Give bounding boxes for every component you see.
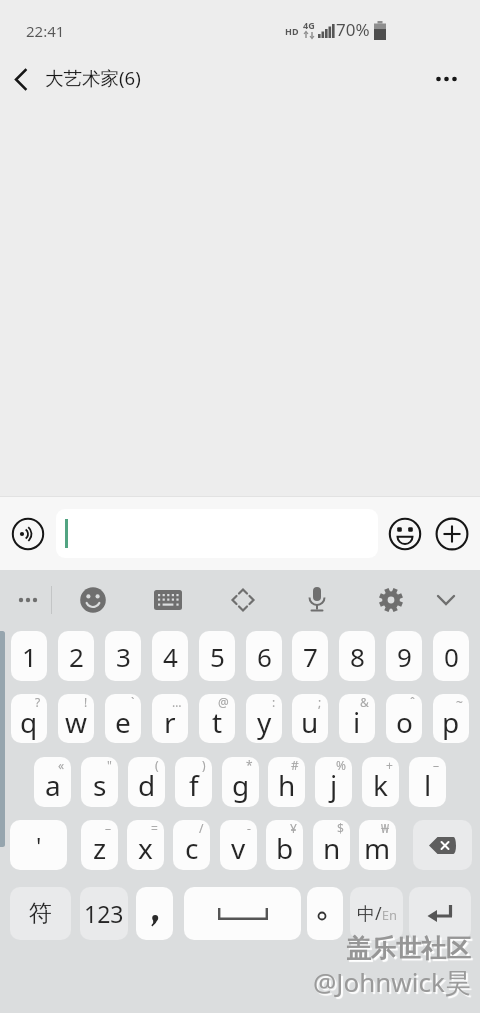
staticText: a xyxy=(45,766,61,804)
button[interactable]: h xyxy=(268,757,305,807)
button[interactable] xyxy=(435,517,469,551)
staticText: ₩ xyxy=(381,820,390,836)
button[interactable]: l xyxy=(409,757,446,807)
staticText: ( xyxy=(155,757,159,773)
button[interactable]: c xyxy=(173,820,210,870)
button[interactable]: 中/En xyxy=(350,887,403,940)
staticText: u xyxy=(301,703,319,741)
button[interactable] xyxy=(230,587,256,613)
staticText: ; xyxy=(318,694,322,710)
staticText: 2 xyxy=(69,639,84,674)
staticText: s xyxy=(93,766,107,804)
staticText: p xyxy=(442,703,460,741)
button[interactable]: z xyxy=(81,820,118,870)
button[interactable]: n xyxy=(313,820,350,870)
button[interactable] xyxy=(152,589,184,611)
staticText: 4 xyxy=(163,639,178,674)
button[interactable] xyxy=(377,586,405,614)
staticText: = xyxy=(151,820,158,836)
staticText: q xyxy=(20,703,38,741)
staticText: 8 xyxy=(350,639,365,674)
staticText: HD xyxy=(285,25,299,37)
staticText: n xyxy=(323,829,341,867)
button[interactable]: k xyxy=(362,757,399,807)
button[interactable] xyxy=(434,590,458,610)
button[interactable] xyxy=(409,887,471,940)
staticText: r xyxy=(164,703,176,741)
button[interactable]: f xyxy=(175,757,212,807)
button[interactable]: 4 xyxy=(152,631,188,681)
staticText: / xyxy=(199,820,204,836)
staticText: k xyxy=(373,766,388,804)
button[interactable] xyxy=(413,820,472,870)
button[interactable] xyxy=(12,586,44,614)
staticText: & xyxy=(360,694,369,710)
staticText: 盖乐世社区 xyxy=(346,933,471,964)
staticText: 6 xyxy=(257,639,272,674)
button[interactable]: 符 xyxy=(10,887,71,940)
staticText: w xyxy=(65,703,88,741)
staticText: 7 xyxy=(303,639,318,674)
staticText: ˆ xyxy=(410,694,416,710)
staticText: $ xyxy=(337,820,344,836)
button[interactable]: ' xyxy=(10,820,67,870)
button[interactable]: 6 xyxy=(246,631,282,681)
button[interactable]: b xyxy=(266,820,303,870)
button[interactable]: d xyxy=(128,757,165,807)
staticText: l xyxy=(424,766,432,804)
staticText: – xyxy=(105,820,112,836)
button[interactable]: 8 xyxy=(339,631,375,681)
staticText: c xyxy=(185,829,199,867)
staticText: o xyxy=(396,703,413,741)
button[interactable]: w xyxy=(58,694,94,743)
staticText: v xyxy=(231,829,246,867)
staticText: 4G xyxy=(303,19,315,31)
button[interactable]: y xyxy=(246,694,282,743)
button[interactable] xyxy=(184,887,301,940)
button[interactable]: q xyxy=(11,694,47,743)
button[interactable]: 123 xyxy=(80,887,128,940)
button[interactable]: x xyxy=(127,820,164,870)
button[interactable]: 1 xyxy=(11,631,47,681)
staticText: j xyxy=(330,766,338,804)
button[interactable]: g xyxy=(222,757,259,807)
staticText: b xyxy=(276,829,294,867)
staticText: x xyxy=(138,829,153,867)
staticText: ~ xyxy=(456,694,463,710)
staticText: y xyxy=(257,703,272,741)
button[interactable]: 2 xyxy=(58,631,94,681)
button[interactable]: t xyxy=(199,694,235,743)
button[interactable]: 3 xyxy=(105,631,141,681)
button[interactable] xyxy=(79,586,107,614)
staticText: 大艺术家(6) xyxy=(45,65,141,90)
button[interactable]: j xyxy=(315,757,352,807)
staticText: 22:41 xyxy=(26,21,65,41)
button[interactable]: 7 xyxy=(292,631,328,681)
staticText: 3 xyxy=(116,639,131,674)
button[interactable]: 5 xyxy=(199,631,235,681)
button[interactable] xyxy=(6,62,40,96)
button[interactable] xyxy=(11,517,45,551)
button[interactable] xyxy=(388,517,422,551)
button[interactable]: s xyxy=(81,757,118,807)
button[interactable]: u xyxy=(292,694,328,743)
button[interactable]: o xyxy=(386,694,422,743)
button[interactable]: e xyxy=(105,694,141,743)
button[interactable]: 0 xyxy=(433,631,469,681)
button[interactable] xyxy=(56,509,378,558)
button[interactable] xyxy=(306,585,328,615)
button[interactable] xyxy=(136,887,173,940)
button[interactable]: v xyxy=(220,820,257,870)
staticText: 123 xyxy=(84,898,124,929)
button[interactable]: i xyxy=(339,694,375,743)
button[interactable]: r xyxy=(152,694,188,743)
staticText: % xyxy=(336,757,346,773)
staticText: ) xyxy=(202,757,206,773)
button[interactable]: a xyxy=(34,757,71,807)
button[interactable]: p xyxy=(433,694,469,743)
button[interactable]: m xyxy=(359,820,396,870)
staticText: 1 xyxy=(22,639,37,674)
button[interactable]: 9 xyxy=(386,631,422,681)
button[interactable] xyxy=(428,64,464,92)
button[interactable] xyxy=(307,887,343,940)
